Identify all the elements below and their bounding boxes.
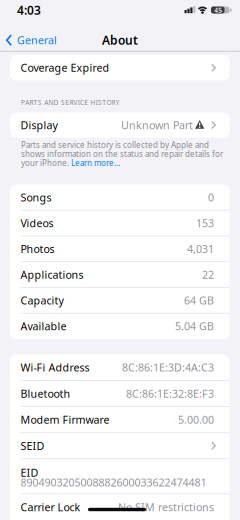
staticText: shows information on the status and repa… xyxy=(21,149,223,159)
staticText: Wi-Fi Address xyxy=(20,360,89,374)
staticText: 8C:86:1E:3D:4A:C3 xyxy=(122,360,214,374)
staticText: Capacity xyxy=(20,293,63,307)
button[interactable]: SEID xyxy=(10,433,230,459)
staticText: Songs xyxy=(20,190,51,204)
staticText: About xyxy=(102,32,138,48)
staticText: 0 xyxy=(208,190,214,204)
button[interactable]: Learn more... xyxy=(71,158,120,168)
staticText: PARTS AND SERVICE HISTORY xyxy=(21,98,120,107)
staticText: Carrier Lock xyxy=(20,500,80,514)
staticText: 64 GB xyxy=(184,293,214,307)
staticText: General xyxy=(17,33,57,47)
staticText: Photos xyxy=(20,242,54,256)
staticText: your iPhone. xyxy=(21,158,71,168)
staticText: EID xyxy=(20,465,38,480)
staticText: 4:03 xyxy=(17,2,41,18)
button[interactable]: Display xyxy=(10,112,230,138)
staticText: Videos xyxy=(20,216,53,230)
staticText: Modem Firmware xyxy=(20,412,109,427)
staticText: Applications xyxy=(20,267,83,282)
staticText: 22 xyxy=(202,267,214,282)
staticText: 5.00.00 xyxy=(178,412,214,427)
staticText: 8C:86:1E:32:8E:F3 xyxy=(126,386,214,401)
staticText: Display xyxy=(20,118,57,132)
staticText: 5.04 GB xyxy=(175,319,214,333)
staticText: Parts and service history is collected b… xyxy=(21,140,209,150)
staticText: Bluetooth xyxy=(20,386,70,401)
staticText: Unknown Part xyxy=(121,118,193,132)
staticText: No SIM restrictions xyxy=(118,500,214,514)
staticText: 153 xyxy=(196,216,214,230)
staticText: Learn more... xyxy=(71,158,120,168)
staticText: 8904903205008882600033622474481 xyxy=(20,475,206,489)
staticText: SEID xyxy=(20,439,44,453)
button[interactable]: Coverage Expired xyxy=(10,55,230,80)
staticText: Coverage Expired xyxy=(20,61,109,75)
staticText: Available xyxy=(20,319,66,333)
staticText: 4,031 xyxy=(187,242,214,256)
button[interactable]: General xyxy=(2,31,78,49)
staticText: 45 xyxy=(214,6,222,15)
